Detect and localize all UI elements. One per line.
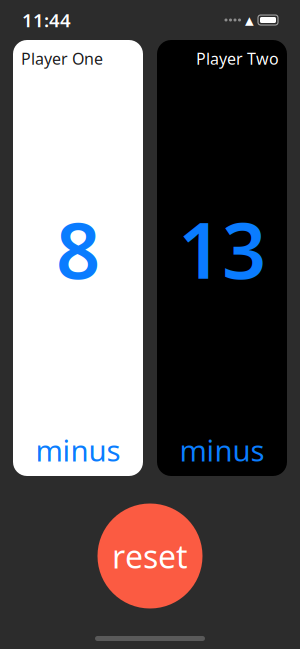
staticText: 13 (178, 197, 266, 300)
staticText: minus (179, 430, 264, 469)
staticText: 11:44 (22, 8, 71, 32)
button[interactable]: minus (13, 428, 143, 472)
button[interactable]: minus (157, 428, 287, 472)
button[interactable]: reset (97, 503, 202, 608)
staticText: minus (35, 430, 120, 469)
staticText: 8 (56, 197, 100, 300)
staticText: Player One (21, 48, 103, 69)
staticText: ▴ (245, 10, 254, 30)
staticText: reset (112, 535, 188, 577)
staticText: Player Two (196, 48, 279, 69)
